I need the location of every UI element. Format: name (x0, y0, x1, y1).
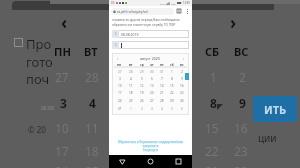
button[interactable]: 4 (157, 105, 167, 113)
staticText: 6 (181, 107, 183, 111)
staticText: 6 (151, 77, 153, 81)
staticText: 31 (118, 107, 122, 111)
staticText: 7 (161, 77, 163, 81)
other: Secure (113, 10, 116, 13)
staticText: ср (140, 63, 144, 67)
button[interactable]: 5 (136, 75, 147, 82)
button[interactable]: 24 (114, 97, 125, 105)
staticText: 08.08.2019 (121, 32, 139, 37)
button[interactable]: 3 (114, 75, 125, 82)
staticText: 30 (234, 163, 248, 168)
button[interactable]: 2 (136, 105, 147, 113)
button[interactable]: 5 (167, 105, 177, 113)
button[interactable]: 3 (147, 105, 157, 113)
button[interactable]: 13 (147, 82, 157, 89)
button[interactable]: 7 (157, 75, 167, 82)
staticText: справки за другой период Вам необходимо (112, 18, 180, 22)
staticText: Обратиться в Управление поддержки/или за… (112, 140, 189, 148)
staticText: 22 (170, 91, 174, 95)
staticText: 14 (160, 84, 164, 88)
staticText: 18 (85, 143, 99, 159)
staticText: 17 (55, 143, 69, 159)
staticText: 12 (140, 84, 144, 88)
button[interactable]: 4 (125, 75, 136, 82)
button[interactable]: 31 (157, 68, 167, 75)
button[interactable]: 28 (125, 68, 136, 75)
button[interactable]: 29 (136, 68, 147, 75)
staticText: 4 (89, 95, 96, 111)
button[interactable]: 23 (177, 89, 187, 97)
staticText: гото (26, 53, 53, 71)
button[interactable]: C (112, 41, 189, 49)
button[interactable]: Back (109, 155, 136, 168)
staticText: 15 (205, 120, 219, 136)
button[interactable]: 26 (136, 97, 147, 105)
button[interactable]: ИТЬ (253, 96, 297, 122)
button[interactable]: 14 (157, 82, 167, 89)
staticText: Про (26, 35, 52, 53)
button[interactable]: 8 (167, 75, 177, 82)
staticText: 23 (180, 91, 184, 95)
staticText: 29 (140, 70, 144, 74)
button[interactable]: 1 (125, 105, 136, 113)
button[interactable]: 16 (177, 82, 187, 89)
staticText: 28 (160, 99, 164, 103)
button[interactable]: Previous month (114, 55, 121, 62)
button[interactable]: 30 (147, 68, 157, 75)
button[interactable]: 11 (125, 82, 136, 89)
staticText: 1 (210, 69, 217, 85)
button[interactable]: 30 (177, 97, 187, 105)
button[interactable]: 21 (157, 89, 167, 97)
button[interactable]: 20 (147, 89, 157, 97)
button[interactable]: 29 (167, 97, 177, 105)
staticText: 28 (85, 69, 99, 85)
staticText: 15 (170, 84, 174, 88)
staticText: 16 (180, 84, 184, 88)
button[interactable]: 9 (177, 75, 187, 82)
staticText: 29 (205, 163, 219, 168)
button[interactable]: 17 (114, 89, 125, 97)
button[interactable]: 2 (177, 68, 187, 75)
button[interactable]: 27 (147, 97, 157, 105)
button[interactable]: 25 (125, 97, 136, 105)
staticText: ВС (234, 44, 249, 59)
staticText: 3 (60, 95, 67, 111)
staticText: ции (258, 131, 277, 145)
button[interactable]: 6 (147, 75, 157, 82)
staticText: вс (180, 63, 184, 67)
staticText: 5 (141, 77, 143, 81)
staticText: C (115, 32, 117, 36)
button[interactable]: 18 (125, 89, 136, 97)
staticText: пт (160, 63, 164, 67)
button[interactable]: 19 (136, 89, 147, 97)
staticText: обратиться в клиентскую службу ТО ПФР (112, 23, 176, 27)
staticText: 30 (150, 70, 154, 74)
button[interactable]: 6 (177, 105, 187, 113)
button[interactable]: Recent apps (164, 155, 192, 168)
button[interactable]: 15 (167, 82, 177, 89)
staticText: август 2020 (140, 56, 160, 61)
button[interactable]: 1 (167, 68, 177, 75)
staticText: 31 (160, 70, 164, 74)
staticText: 17 (118, 91, 122, 95)
button[interactable]: Tabs (176, 8, 182, 14)
staticText: 27 (55, 69, 69, 85)
button[interactable]: Обратиться в Управление поддержки/или за… (112, 140, 189, 152)
button[interactable]: Home (136, 155, 164, 168)
button[interactable]: 12 (136, 82, 147, 89)
button[interactable]: 28 (157, 97, 167, 105)
button[interactable]: 10 (114, 82, 125, 89)
staticText: ‹ (61, 11, 68, 34)
button[interactable]: C (112, 30, 189, 38)
button[interactable]: Secure (111, 8, 174, 15)
button[interactable]: 27 (114, 68, 125, 75)
staticText: ВК (111, 1, 115, 5)
staticText: 11 (129, 84, 133, 88)
staticText: es.pfrf.ru/inquiry/sn/ (117, 10, 149, 14)
staticText: 4 (161, 107, 163, 111)
staticText: 9 (239, 95, 246, 111)
button[interactable]: More options (184, 8, 190, 14)
button[interactable]: 31 (114, 105, 125, 113)
button[interactable]: Next month (180, 55, 187, 62)
button[interactable]: 22 (167, 89, 177, 97)
